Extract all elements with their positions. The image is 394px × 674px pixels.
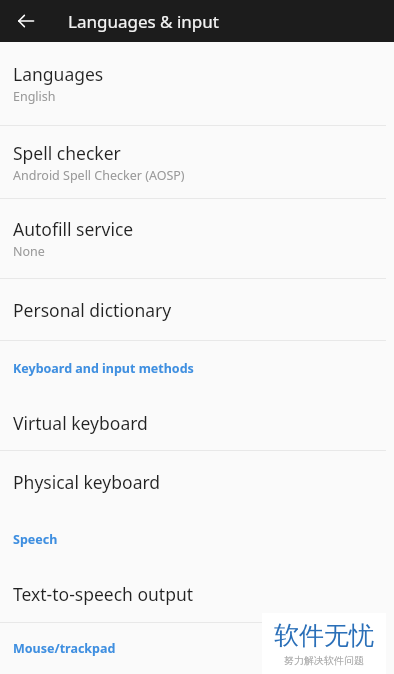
staticText: English [13, 88, 56, 105]
staticText: 软件无忧 [274, 620, 374, 651]
button[interactable]: Physical keyboard [0, 451, 394, 512]
staticText: Android Spell Checker (AOSP) [13, 167, 185, 184]
button[interactable]: Text-to-speech output [0, 566, 394, 622]
staticText: Languages & input [68, 10, 219, 33]
staticText: Mouse/trackpad [13, 640, 116, 657]
staticText: Autofill service [13, 217, 134, 241]
button[interactable]: Autofill service [0, 199, 394, 278]
staticText: Spell checker [13, 141, 121, 165]
button[interactable]: Spell checker [0, 126, 394, 198]
button[interactable]: Languages [0, 42, 394, 125]
staticText: 努力解决软件问题 [284, 654, 364, 667]
button[interactable]: Personal dictionary [0, 279, 394, 340]
staticText: Virtual keyboard [13, 411, 148, 435]
button[interactable]: Virtual keyboard [0, 396, 394, 450]
staticText: Languages [13, 62, 104, 86]
staticText: None [13, 243, 45, 260]
staticText: Personal dictionary [13, 298, 172, 322]
staticText: Text-to-speech output [13, 582, 194, 606]
staticText: Speech [13, 531, 58, 548]
button[interactable]: Back [10, 5, 42, 37]
staticText: Physical keyboard [13, 470, 161, 494]
staticText: Keyboard and input methods [13, 360, 194, 377]
